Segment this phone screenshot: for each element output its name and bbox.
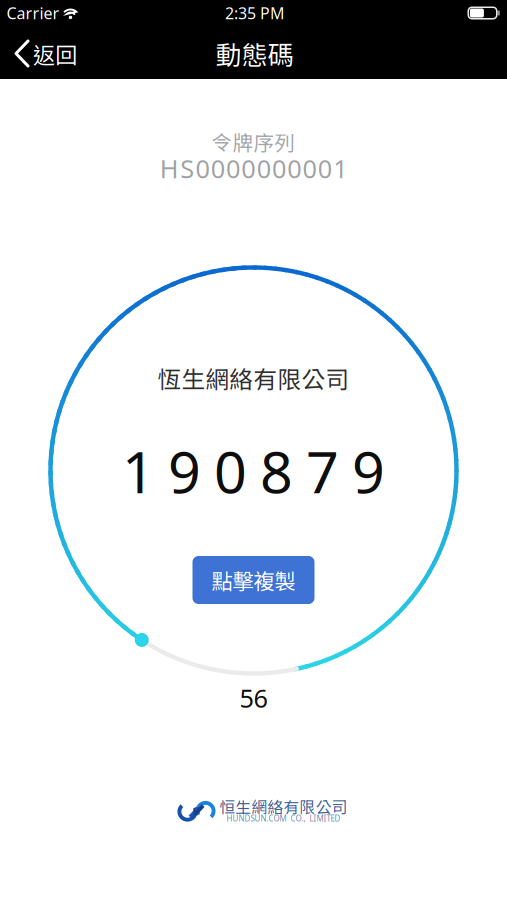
- staticText: 恒生網絡有限公司: [219, 795, 347, 818]
- staticText: 恆生網絡有限公司: [157, 361, 349, 395]
- staticText: 點擊複製: [211, 565, 295, 595]
- staticText: 動態碼: [215, 35, 293, 72]
- button[interactable]: 點擊複製: [192, 556, 314, 604]
- staticText: 56: [239, 681, 267, 715]
- staticText: 令牌序列: [211, 127, 295, 156]
- staticText: 2:35 PM: [225, 2, 285, 24]
- staticText: 返回: [33, 38, 77, 70]
- staticText: 190879: [122, 433, 385, 509]
- staticText: HS0000000001: [160, 152, 347, 185]
- staticText: HUNDSUN.COM CO., LIMITED: [226, 813, 340, 824]
- staticText: Carrier: [6, 2, 59, 24]
- button[interactable]: 返回: [0, 27, 84, 79]
